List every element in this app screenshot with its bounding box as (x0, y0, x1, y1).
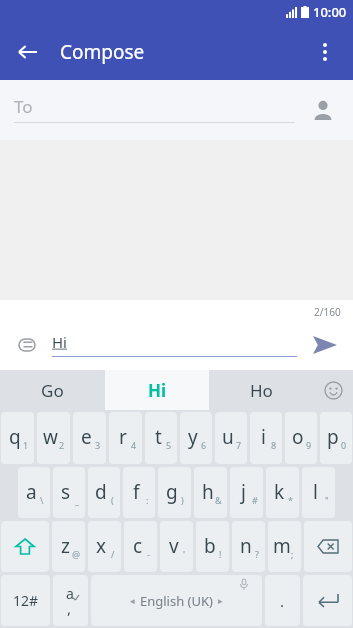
button[interactable]: q (1, 412, 34, 464)
staticText: Hi (148, 379, 167, 402)
staticText: 1 (23, 439, 29, 451)
button[interactable]: n (232, 521, 265, 572)
staticText: a (26, 479, 37, 505)
staticText: c (133, 533, 143, 559)
staticText: Go (41, 379, 64, 402)
staticText: f (133, 479, 140, 505)
staticText: # (252, 494, 258, 506)
button[interactable]: m (268, 521, 301, 572)
staticText: i (261, 424, 266, 450)
staticText: d (95, 479, 107, 505)
button[interactable]: k (266, 467, 299, 518)
button[interactable]: o (285, 412, 317, 464)
staticText: y (188, 424, 198, 450)
staticText: ; (291, 548, 294, 560)
staticText: ) (181, 494, 184, 506)
staticText: e (81, 424, 92, 450)
staticText: , (67, 598, 72, 618)
button[interactable]: Send (305, 325, 345, 365)
staticText: s (61, 479, 71, 505)
staticText: " (325, 494, 329, 506)
staticText: o (292, 424, 304, 450)
staticText: 0 (341, 439, 347, 451)
button[interactable]: a (18, 467, 50, 518)
staticText: w (43, 424, 58, 450)
button[interactable]: 12# (1, 575, 50, 626)
button[interactable]: Language and comma (53, 575, 88, 626)
staticText: ( (111, 494, 114, 506)
button[interactable]: d (88, 467, 120, 518)
staticText: ' (183, 548, 186, 560)
staticText: Compose (60, 39, 145, 65)
button[interactable]: p (320, 412, 352, 464)
button[interactable]: x (88, 521, 121, 572)
button[interactable]: s (53, 467, 85, 518)
button[interactable]: v (160, 521, 193, 572)
staticText: - (147, 548, 150, 560)
staticText: 4 (131, 439, 137, 451)
staticText: English (UK) (140, 592, 213, 610)
staticText: : (146, 494, 149, 506)
staticText: _ (75, 494, 79, 506)
button[interactable]: . (265, 575, 300, 626)
button[interactable]: Hi (52, 324, 297, 366)
button[interactable]: f (123, 467, 155, 518)
button[interactable]: e (73, 412, 106, 464)
staticText: g (166, 479, 178, 505)
button[interactable]: u (215, 412, 247, 464)
button[interactable]: b (196, 521, 229, 572)
staticText: b (204, 533, 216, 559)
button[interactable]: Enter (303, 575, 352, 626)
button[interactable]: Emoji (313, 370, 353, 410)
staticText: 10:00 (313, 3, 347, 21)
staticText: q (9, 424, 21, 450)
staticText: To (14, 95, 33, 118)
button[interactable]: Back (6, 30, 50, 74)
staticText: v (169, 533, 179, 559)
staticText: 2 (59, 439, 65, 451)
staticText: @ (72, 548, 81, 560)
button[interactable]: Backspace (304, 521, 352, 572)
staticText: z (61, 533, 70, 559)
button[interactable]: c (124, 521, 157, 572)
button[interactable]: Ho (209, 370, 313, 410)
staticText: 7 (236, 439, 242, 451)
staticText: j (241, 479, 246, 505)
staticText: ◂ (130, 596, 135, 606)
button[interactable]: t (145, 412, 177, 464)
button[interactable]: More options (303, 30, 347, 74)
button[interactable]: Add contact (303, 90, 343, 130)
staticText: Hi (52, 332, 67, 352)
button[interactable]: To (14, 99, 295, 122)
button[interactable]: j (230, 467, 263, 518)
button[interactable]: i (250, 412, 282, 464)
staticText: x (96, 533, 107, 559)
staticText: 5 (166, 439, 172, 451)
staticText: . (280, 591, 285, 611)
button[interactable]: g (158, 467, 191, 518)
button[interactable]: y (180, 412, 212, 464)
staticText: 12# (13, 591, 39, 610)
staticText: m (273, 533, 291, 559)
staticText: 2/160 (314, 305, 341, 319)
staticText: & (215, 494, 222, 506)
button[interactable]: Go (0, 370, 105, 410)
staticText: 8 (271, 439, 277, 451)
button[interactable]: l (302, 467, 335, 518)
button[interactable]: z (52, 521, 85, 572)
staticText: 9 (306, 439, 312, 451)
staticText: Ho (250, 379, 273, 402)
button[interactable]: Hi (105, 370, 209, 410)
button[interactable]: r (109, 412, 142, 464)
staticText: 3 (95, 439, 101, 451)
button[interactable]: Space, English (UK) (91, 575, 262, 626)
button[interactable]: h (194, 467, 227, 518)
staticText: u (222, 424, 234, 450)
button[interactable]: w (37, 412, 70, 464)
button[interactable]: Shift (1, 521, 49, 572)
staticText: n (240, 533, 252, 559)
staticText: \ (40, 494, 44, 506)
staticText: l (313, 479, 318, 505)
staticText: ? (255, 548, 259, 560)
button[interactable]: Attach (10, 328, 44, 362)
